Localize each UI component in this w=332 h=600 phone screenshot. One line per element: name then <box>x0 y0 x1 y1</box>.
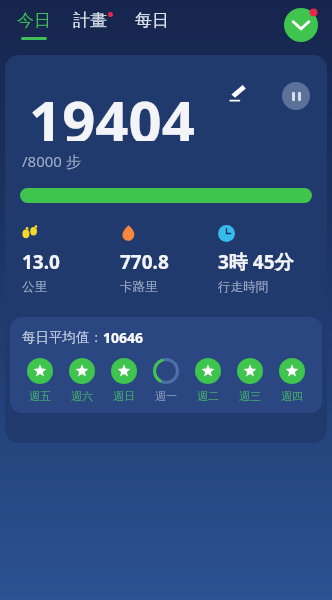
staticText: 週三 <box>239 389 261 403</box>
button[interactable]: Expand <box>284 8 318 42</box>
button[interactable]: 今日 <box>17 0 51 40</box>
button[interactable]: 週一 <box>146 358 186 403</box>
button[interactable]: 週四 <box>272 358 312 403</box>
button[interactable]: 每日 <box>135 0 169 31</box>
staticText: 公里 <box>22 279 47 295</box>
button[interactable]: 週六 <box>62 358 102 403</box>
staticText: 週四 <box>281 389 303 403</box>
button[interactable]: Edit <box>227 83 247 103</box>
button[interactable]: 13.0 <box>22 225 120 295</box>
staticText: 週五 <box>29 389 51 403</box>
staticText: 10646 <box>103 328 144 347</box>
button[interactable]: 每日平均值： <box>10 317 322 413</box>
button[interactable]: 3時 45分 <box>218 225 327 295</box>
staticText: 每日平均值： <box>22 329 103 346</box>
staticText: 計畫 <box>73 10 107 31</box>
staticText: 3時 45分 <box>218 249 294 275</box>
staticText: 卡路里 <box>120 279 158 295</box>
staticText: 週六 <box>71 389 93 403</box>
staticText: 19404 <box>29 81 195 141</box>
staticText: /8000 步 <box>22 151 81 171</box>
button[interactable]: 週三 <box>230 358 270 403</box>
button[interactable]: 週日 <box>104 358 144 403</box>
staticText: 13.0 <box>22 249 60 275</box>
staticText: 770.8 <box>120 249 169 275</box>
staticText: 週一 <box>155 389 177 403</box>
button[interactable]: 週二 <box>188 358 228 403</box>
staticText: 今日 <box>17 10 51 31</box>
button[interactable]: 週五 <box>20 358 60 403</box>
button[interactable]: Pause <box>282 82 310 110</box>
staticText: 行走時間 <box>218 279 268 295</box>
staticText: 週二 <box>197 389 219 403</box>
button[interactable]: 770.8 <box>120 225 218 295</box>
staticText: 週日 <box>113 389 135 403</box>
staticText: 每日 <box>135 10 169 31</box>
button[interactable]: 計畫 <box>73 0 113 31</box>
